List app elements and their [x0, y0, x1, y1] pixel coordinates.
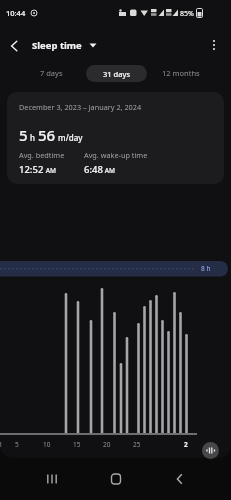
staticText: 25: [133, 440, 141, 449]
button[interactable]: 31 days: [86, 65, 147, 82]
staticText: Avg. wake-up time: [84, 150, 148, 160]
staticText: 31 days: [103, 69, 131, 79]
staticText: h: [28, 132, 38, 143]
staticText: 5: [15, 440, 19, 449]
staticText: 5: [19, 125, 28, 145]
staticText: 56: [38, 125, 56, 145]
staticText: 8 h: [201, 264, 211, 273]
staticText: m/day: [56, 132, 83, 143]
button[interactable]: December 3, 2023 – January 2, 2024: [7, 92, 224, 184]
staticText: December 3, 2023 – January 2, 2024: [19, 102, 142, 112]
staticText: 7 days: [40, 68, 63, 78]
button[interactable]: 7 days: [30, 63, 72, 83]
button[interactable]: Sleep time: [32, 28, 97, 62]
staticText: 12:52: [19, 163, 44, 176]
button[interactable]: [158, 461, 202, 497]
staticText: 3: [0, 440, 2, 449]
staticText: 85%: [180, 9, 194, 19]
button[interactable]: [94, 461, 138, 497]
staticText: 10:44: [6, 8, 26, 18]
staticText: 6:48: [84, 163, 103, 176]
staticText: AM: [103, 166, 115, 175]
button[interactable]: [204, 35, 224, 55]
staticText: 2: [184, 440, 188, 449]
staticText: 10: [43, 440, 51, 449]
staticText: 12 months: [162, 68, 200, 78]
button[interactable]: 12 months: [156, 63, 206, 83]
button[interactable]: [4, 36, 24, 56]
staticText: Avg. bedtime: [19, 150, 65, 160]
staticText: Sleep time: [32, 39, 82, 52]
staticText: AM: [44, 166, 56, 175]
button[interactable]: [202, 442, 219, 459]
button[interactable]: [30, 461, 74, 497]
staticText: 20: [103, 440, 111, 449]
staticText: 15: [73, 440, 81, 449]
